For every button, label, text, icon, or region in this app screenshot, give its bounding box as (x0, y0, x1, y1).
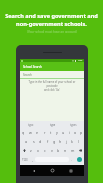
button[interactable]: Shift (20, 146, 28, 155)
staticText: s (33, 139, 35, 144)
staticText: g (53, 139, 56, 144)
button[interactable]: c (41, 146, 48, 155)
staticText: School Search (23, 65, 42, 69)
button[interactable]: a (23, 137, 30, 146)
staticText: types (70, 123, 77, 127)
staticText: q (22, 130, 25, 135)
staticText: y (56, 130, 58, 135)
button[interactable]: ?123 (20, 155, 30, 164)
button[interactable]: d (37, 137, 44, 146)
staticText: b (57, 148, 60, 153)
button[interactable]: u (60, 128, 66, 137)
button[interactable]: f (44, 137, 51, 146)
button[interactable]: i (66, 128, 72, 137)
staticText: r (44, 130, 46, 135)
button[interactable]: Enter (74, 155, 84, 164)
staticText: d (39, 139, 42, 144)
button[interactable]: Home (48, 166, 57, 175)
staticText: a (25, 139, 28, 144)
button[interactable]: r (41, 128, 48, 137)
button[interactable]: Recents (66, 166, 75, 175)
button[interactable]: z (28, 146, 34, 155)
button[interactable]: typo (20, 123, 42, 127)
staticText: Search and save government and non-gover… (5, 12, 98, 27)
button[interactable]: s (30, 137, 37, 146)
button[interactable]: e (34, 128, 41, 137)
button[interactable]: Backspace (76, 146, 84, 155)
staticText: z (30, 148, 32, 153)
staticText: o (74, 130, 77, 135)
button[interactable]: l (75, 137, 81, 146)
button[interactable]: , (30, 155, 35, 164)
button[interactable]: x (34, 146, 41, 155)
staticText: , (32, 158, 33, 162)
button[interactable]: g (51, 137, 57, 146)
staticText: ?123 (22, 158, 28, 162)
button[interactable]: School Search (20, 62, 84, 71)
staticText: t (50, 130, 52, 135)
staticText: Search (23, 73, 32, 77)
staticText: x (37, 148, 39, 153)
button[interactable]: o (72, 128, 78, 137)
staticText: p (80, 130, 83, 135)
button[interactable]: j (63, 137, 69, 146)
button[interactable]: h (57, 137, 63, 146)
button[interactable]: n (62, 146, 69, 155)
button[interactable]: y (54, 128, 60, 137)
staticText: type (50, 123, 56, 127)
staticText: i (69, 130, 70, 135)
button[interactable]: k (69, 137, 75, 146)
staticText: n (64, 148, 67, 153)
button[interactable]: m (69, 146, 76, 155)
staticText: l (78, 139, 79, 144)
button[interactable]: b (55, 146, 62, 155)
button[interactable]: Back (29, 166, 38, 175)
button[interactable]: type (42, 123, 63, 127)
button[interactable]: p (78, 128, 84, 137)
button[interactable]: q (20, 128, 27, 137)
staticText: e (36, 130, 39, 135)
staticText: f (47, 139, 49, 144)
staticText: . (71, 158, 72, 162)
button[interactable]: v (48, 146, 55, 155)
staticText: c (44, 148, 46, 153)
staticText: w (29, 130, 32, 135)
staticText: v (51, 148, 53, 153)
staticText: m (71, 148, 75, 153)
staticText: j (66, 139, 67, 144)
staticText: Type in the full name of your school or … (24, 80, 80, 92)
staticText: (Your school must have an account) (27, 30, 77, 34)
button[interactable]: types (63, 123, 84, 127)
staticText: h (59, 139, 62, 144)
staticText: u (62, 130, 65, 135)
button[interactable]: w (27, 128, 34, 137)
staticText: typo (28, 123, 34, 127)
staticText: k (71, 139, 73, 144)
button[interactable]: t (48, 128, 54, 137)
staticText: 1:04 (78, 59, 83, 62)
